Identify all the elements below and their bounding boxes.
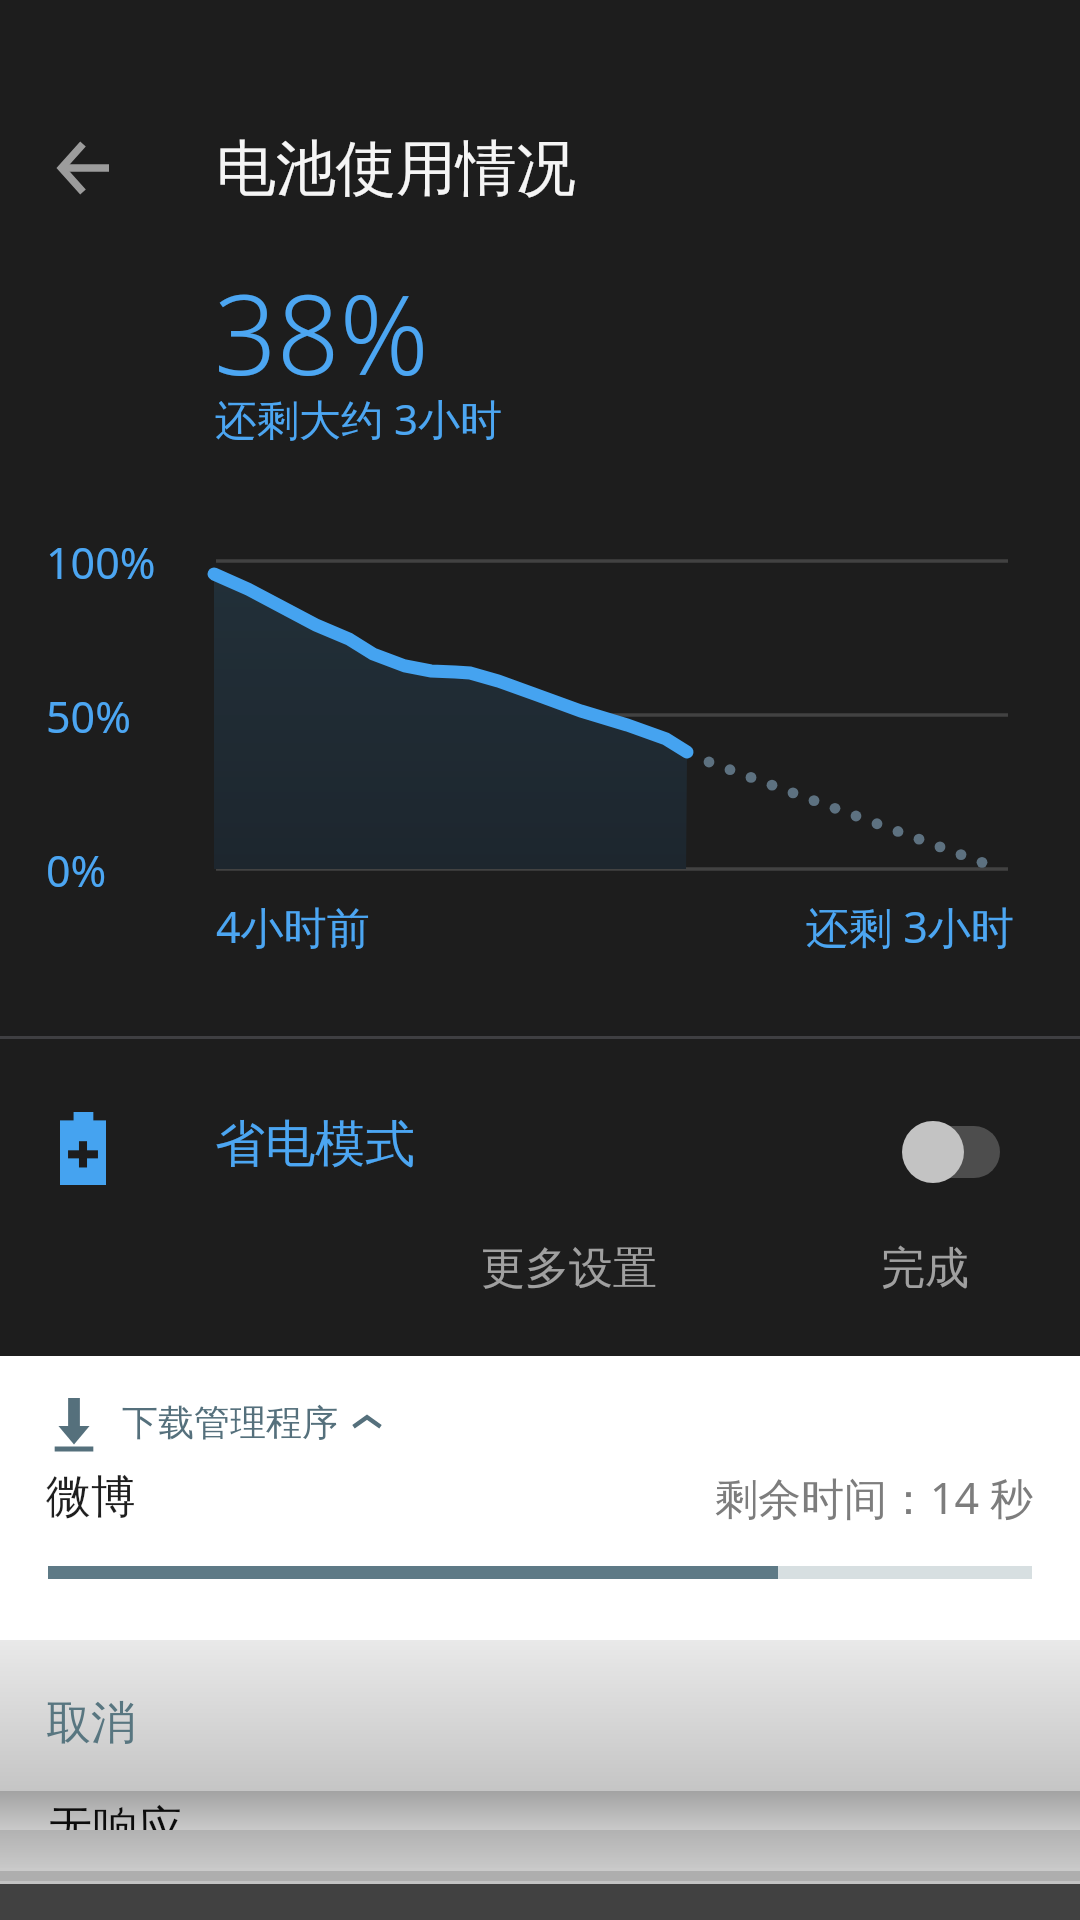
staticText: 电池使用情况 bbox=[216, 131, 576, 207]
staticText: 50% bbox=[46, 687, 131, 746]
button[interactable]: 下载管理程序 bbox=[0, 1386, 1080, 1458]
button[interactable]: 完成 bbox=[854, 1216, 996, 1320]
staticText: 完成 bbox=[881, 1241, 969, 1296]
staticText: 0% bbox=[46, 841, 107, 900]
button[interactable]: Back bbox=[36, 120, 132, 216]
button[interactable]: 省电模式 bbox=[0, 1040, 1080, 1190]
staticText: 38% bbox=[214, 257, 429, 407]
staticText: 还剩 3小时 bbox=[806, 897, 1014, 956]
staticText: 还剩大约 3小时 bbox=[215, 390, 502, 447]
staticText: 无响应 bbox=[48, 1800, 183, 1839]
staticText: 100% bbox=[46, 533, 156, 592]
staticText: 4小时前 bbox=[216, 897, 370, 956]
button[interactable]: Toggle battery saver bbox=[902, 1121, 998, 1183]
staticText: 剩余时间：14 秒 bbox=[715, 1468, 1034, 1527]
staticText: 省电模式 bbox=[215, 1113, 415, 1176]
staticText: 更多设置 bbox=[481, 1241, 657, 1296]
staticText: 取消 bbox=[46, 1695, 136, 1752]
staticText: 下载管理程序 bbox=[122, 1400, 338, 1445]
button[interactable]: 更多设置 bbox=[458, 1216, 680, 1320]
staticText: 微博 bbox=[46, 1469, 136, 1526]
button[interactable]: 取消 bbox=[0, 1640, 1080, 1791]
button[interactable]: 无响应 bbox=[0, 1791, 1080, 1830]
